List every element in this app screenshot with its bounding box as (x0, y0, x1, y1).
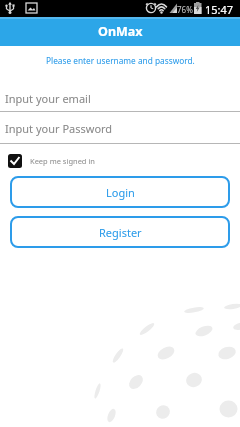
button[interactable]: Input your Password (5, 121, 240, 136)
button[interactable]: Input your email (5, 91, 240, 106)
button[interactable]: Keep me signed in (8, 154, 98, 169)
staticText: Input your email (5, 91, 91, 106)
staticText: Please enter username and password. (46, 55, 195, 66)
staticText: Login (106, 185, 135, 200)
button[interactable]: Register (10, 216, 230, 248)
staticText: Keep me signed in (30, 156, 95, 166)
staticText: Register (99, 225, 142, 240)
staticText: Input your Password (5, 121, 113, 136)
staticText: 76% (177, 4, 193, 15)
button[interactable]: Login (10, 176, 230, 208)
staticText: OnMax (98, 23, 143, 40)
button[interactable]: OnMax (0, 17, 240, 46)
staticText: 15:47 (205, 2, 234, 17)
